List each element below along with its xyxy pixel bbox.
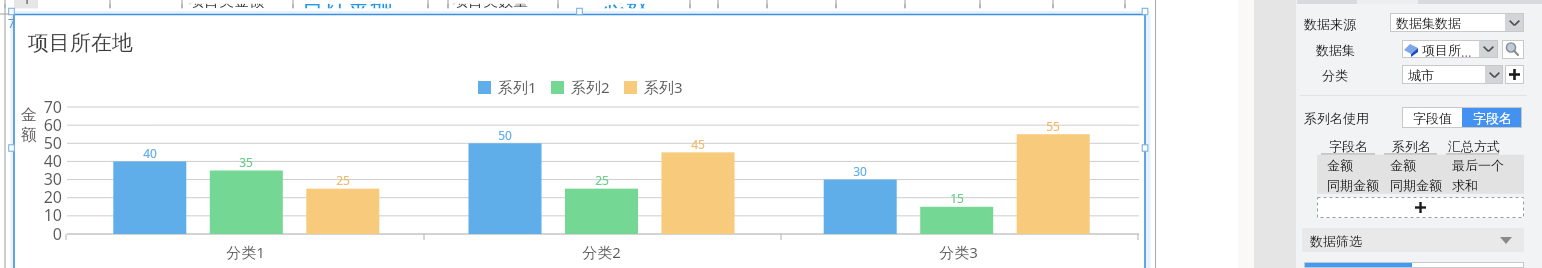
- staticText: 50: [498, 127, 512, 143]
- staticText: 1: [23, 0, 31, 4]
- staticText: 30: [853, 163, 867, 179]
- staticText: 数据筛选: [1310, 233, 1362, 249]
- staticText: 同期金额: [1390, 177, 1442, 193]
- staticText: 总数: [603, 0, 649, 13]
- button[interactable]: 搜索: [1502, 40, 1524, 59]
- button[interactable]: [1402, 40, 1498, 58]
- staticText: 最后一个: [1452, 157, 1504, 173]
- staticText: 金: [21, 105, 37, 125]
- staticText: 20: [43, 186, 62, 208]
- staticText: 项目所在地: [28, 30, 133, 56]
- other: 数据集图标: [1403, 43, 1419, 57]
- staticText: 系列3: [644, 77, 683, 97]
- button[interactable]: 数据筛选: [1302, 228, 1524, 252]
- staticText: 系列名: [1392, 138, 1431, 154]
- staticText: 项目所: [1422, 42, 1461, 58]
- staticText: 汇总方式: [1448, 138, 1500, 154]
- staticText: 字段名: [1473, 110, 1512, 126]
- staticText: 项目美金额: [189, 0, 264, 11]
- staticText: 字段值: [1413, 110, 1452, 126]
- staticText: 字段名: [1329, 138, 1368, 154]
- staticText: 60: [43, 114, 62, 136]
- button[interactable]: 系列3: [624, 77, 683, 97]
- staticText: 项目美数量: [453, 0, 528, 11]
- staticText: 35: [239, 154, 253, 170]
- staticText: 分类3: [939, 242, 978, 262]
- staticText: 额: [21, 125, 37, 145]
- staticText: 合计金额: [301, 0, 393, 13]
- staticText: 7: [8, 15, 15, 31]
- button[interactable]: 添加分类: [1505, 65, 1524, 84]
- staticText: 系列2: [571, 77, 610, 97]
- button[interactable]: 系列1: [478, 77, 537, 97]
- staticText: 系列名使用: [1304, 110, 1369, 126]
- staticText: 25: [595, 172, 609, 188]
- staticText: 55: [1046, 118, 1060, 134]
- staticText: 0: [52, 223, 62, 245]
- button[interactable]: 添加字段: [1317, 197, 1524, 218]
- staticText: 50: [43, 132, 62, 154]
- button[interactable]: 字段值: [1402, 107, 1462, 128]
- staticText: 分类2: [582, 242, 621, 262]
- staticText: 45: [691, 136, 705, 152]
- staticText: 分类: [1322, 67, 1348, 83]
- staticText: 城市: [1408, 67, 1434, 83]
- staticText: 同期金额: [1327, 177, 1379, 193]
- staticText: 70: [43, 96, 62, 118]
- staticText: 分类1: [226, 242, 265, 262]
- staticText: 30: [43, 168, 62, 190]
- staticText: 金额: [1390, 157, 1416, 173]
- button[interactable]: 系列2: [551, 77, 610, 97]
- staticText: 金额: [1327, 157, 1353, 173]
- staticText: 15: [950, 190, 964, 206]
- staticText: 数据来源: [1304, 16, 1356, 32]
- staticText: 数据集: [1316, 42, 1355, 58]
- staticText: 40: [143, 145, 157, 161]
- staticText: 求和: [1452, 177, 1478, 193]
- staticText: 系列1: [498, 77, 537, 97]
- staticText: 数据集数据: [1396, 15, 1461, 31]
- staticText: 25: [336, 172, 350, 188]
- button[interactable]: 字段名: [1462, 107, 1522, 128]
- button[interactable]: 数据集数据: [1390, 13, 1524, 32]
- staticText: 40: [43, 150, 62, 172]
- button[interactable]: 城市: [1402, 65, 1503, 84]
- staticText: ...: [1461, 43, 1472, 61]
- staticText: 10: [43, 204, 62, 226]
